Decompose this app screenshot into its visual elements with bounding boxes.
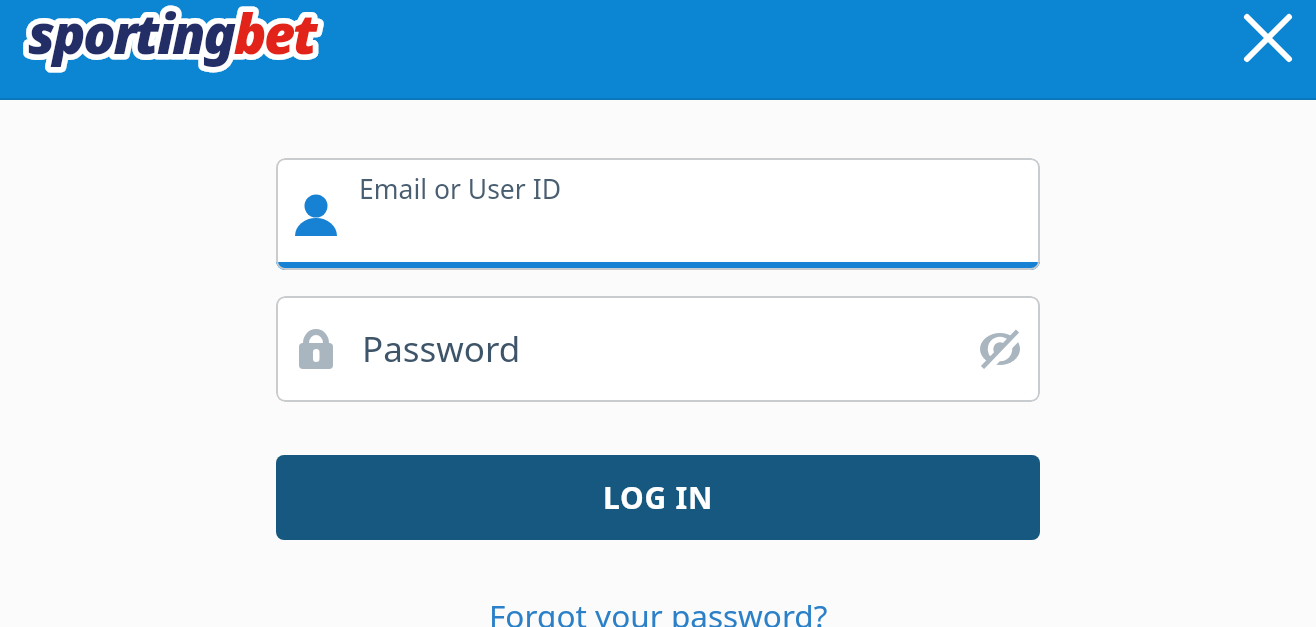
button[interactable]: Forgot your password? (489, 594, 828, 627)
staticText: Forgot your password? (489, 594, 828, 627)
staticText: Password (362, 325, 521, 373)
staticText: LOG IN (603, 477, 714, 518)
button[interactable] (978, 327, 1022, 371)
button[interactable]: Email or User ID (276, 158, 1040, 270)
staticText: sportingbet (28, 0, 316, 70)
staticText: Email or User ID (359, 171, 561, 207)
button[interactable]: LOG IN (276, 455, 1040, 540)
button[interactable]: Password (276, 296, 1040, 402)
staticText: sportingbet (28, 0, 316, 70)
button[interactable] (1246, 16, 1290, 60)
